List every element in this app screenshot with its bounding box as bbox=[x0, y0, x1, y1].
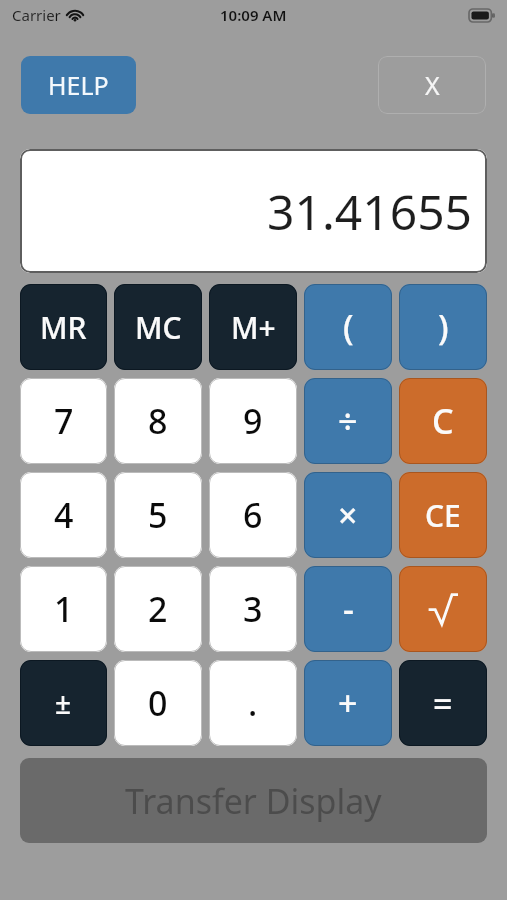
staticText: Transfer Display bbox=[125, 778, 382, 824]
staticText: ± bbox=[55, 684, 72, 722]
button[interactable]: X bbox=[378, 56, 486, 114]
staticText: C bbox=[432, 398, 454, 444]
staticText: 3 bbox=[243, 586, 263, 632]
button[interactable]: HELP bbox=[21, 56, 136, 114]
staticText: 5 bbox=[148, 492, 168, 538]
staticText: ( bbox=[343, 304, 354, 350]
staticText: + bbox=[338, 680, 358, 726]
staticText: 7 bbox=[54, 398, 74, 444]
staticText: = bbox=[433, 680, 453, 726]
staticText: MR bbox=[40, 307, 87, 348]
staticText: Carrier bbox=[12, 5, 61, 25]
staticText: 8 bbox=[148, 398, 168, 444]
button[interactable]: = bbox=[399, 660, 487, 746]
button[interactable]: . bbox=[209, 660, 297, 746]
staticText: MC bbox=[135, 307, 182, 348]
button[interactable]: 6 bbox=[209, 472, 297, 558]
staticText: . bbox=[248, 680, 258, 726]
staticText: 10:09 AM bbox=[220, 5, 287, 25]
staticText: 9 bbox=[243, 398, 263, 444]
button[interactable]: M+ bbox=[209, 284, 297, 370]
staticText: - bbox=[343, 586, 354, 632]
button[interactable]: 7 bbox=[20, 378, 107, 464]
button[interactable]: 5 bbox=[114, 472, 202, 558]
button[interactable]: - bbox=[304, 566, 392, 652]
button[interactable]: Transfer Display bbox=[20, 758, 487, 843]
staticText: 31.41655 bbox=[267, 179, 473, 244]
button[interactable]: 9 bbox=[209, 378, 297, 464]
button[interactable]: + bbox=[304, 660, 392, 746]
button[interactable]: ) bbox=[399, 284, 487, 370]
staticText: 2 bbox=[148, 586, 168, 632]
staticText: X bbox=[425, 68, 440, 102]
staticText: 6 bbox=[243, 492, 263, 538]
staticText: 0 bbox=[148, 680, 168, 726]
button[interactable]: 8 bbox=[114, 378, 202, 464]
staticText: HELP bbox=[48, 68, 109, 102]
button[interactable]: 4 bbox=[20, 472, 107, 558]
button[interactable]: MC bbox=[114, 284, 202, 370]
staticText: M+ bbox=[231, 307, 276, 348]
button[interactable]: CE bbox=[399, 472, 487, 558]
button[interactable]: 3 bbox=[209, 566, 297, 652]
staticText: 4 bbox=[54, 492, 74, 538]
button[interactable]: 1 bbox=[20, 566, 107, 652]
button[interactable]: ÷ bbox=[304, 378, 392, 464]
button[interactable]: MR bbox=[20, 284, 107, 370]
staticText: 1 bbox=[54, 586, 74, 632]
button[interactable]: ( bbox=[304, 284, 392, 370]
staticText: ) bbox=[438, 304, 449, 350]
button[interactable]: C bbox=[399, 378, 487, 464]
button[interactable]: × bbox=[304, 472, 392, 558]
button[interactable]: Square root bbox=[399, 566, 487, 652]
button[interactable]: 0 bbox=[114, 660, 202, 746]
staticText: × bbox=[338, 492, 358, 538]
staticText: ÷ bbox=[338, 398, 358, 444]
staticText: CE bbox=[425, 495, 461, 536]
button[interactable]: 2 bbox=[114, 566, 202, 652]
button[interactable]: Plus minus bbox=[20, 660, 107, 746]
